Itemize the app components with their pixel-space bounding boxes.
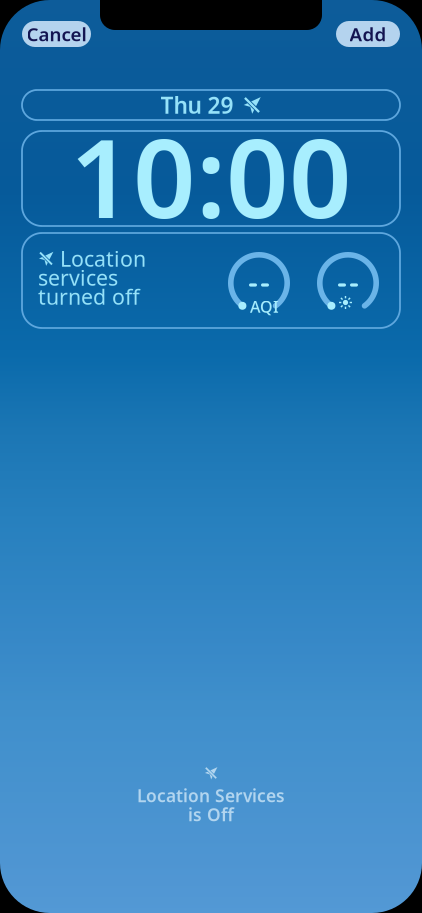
staticText: Location	[60, 244, 146, 273]
button[interactable]: 10:00	[22, 131, 400, 226]
staticText: 10:00	[70, 103, 352, 248]
staticText: Cancel	[26, 22, 86, 46]
staticText: Location Services	[137, 784, 285, 807]
staticText: services	[38, 263, 118, 292]
button[interactable]: Cancel	[22, 21, 91, 47]
staticText: turned off	[38, 282, 140, 311]
staticText: is Off	[188, 803, 234, 826]
staticText: AQI	[250, 296, 279, 317]
button[interactable]: Thu 29	[22, 90, 400, 120]
staticText: Add	[349, 22, 386, 46]
button[interactable]: Location	[22, 233, 400, 328]
staticText: Thu 29	[160, 90, 233, 120]
button[interactable]: Add	[336, 21, 400, 47]
